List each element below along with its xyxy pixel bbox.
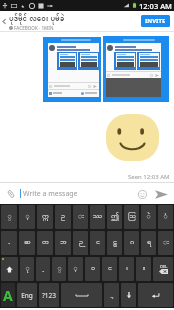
button[interactable]: တ <box>37 231 53 255</box>
staticText: 12:03 AM <box>139 1 172 11</box>
button[interactable]: ဝ <box>85 257 100 281</box>
button[interactable]: း <box>158 231 173 255</box>
staticText: . <box>42 265 44 274</box>
button[interactable]: Shift <box>1 257 18 281</box>
staticText: DEL <box>160 264 168 269</box>
button[interactable]: ္ <box>1 205 17 229</box>
button[interactable]: Attach file <box>4 187 17 200</box>
staticText: ္ <box>7 212 12 222</box>
staticText: ဝ <box>91 264 95 274</box>
staticText: ံ <box>163 212 168 222</box>
staticText: INVITE <box>145 17 166 25</box>
staticText: ု <box>25 264 30 274</box>
button[interactable]: ု <box>20 257 34 281</box>
button[interactable]: Switch language <box>1 283 15 307</box>
button[interactable]: Hide keyboard <box>121 283 136 307</box>
button[interactable]: ံ <box>158 205 173 229</box>
staticText: ၊ <box>126 264 128 274</box>
staticText: ဠ <box>113 238 117 248</box>
staticText: ., <box>110 291 114 300</box>
staticText: း <box>78 212 84 222</box>
button[interactable]: ဥ <box>55 205 71 229</box>
staticText: ?123 <box>42 291 56 300</box>
button[interactable]: Enter <box>138 283 173 307</box>
staticText: ဥ <box>61 212 65 222</box>
button[interactable]: ဆ <box>19 231 35 255</box>
button[interactable]: Send <box>153 186 169 202</box>
staticText: ဲ <box>146 212 151 222</box>
button[interactable]: Emoji <box>135 187 149 201</box>
staticText: ့ <box>25 212 30 222</box>
button[interactable]: ., <box>104 283 119 307</box>
staticText: တ <box>42 238 49 248</box>
button[interactable]: ဘ <box>55 231 71 255</box>
staticText: Seen 12:03 AM <box>128 173 170 181</box>
button[interactable]: · <box>1 231 17 255</box>
button[interactable]: ္ <box>52 257 66 281</box>
staticText: Write a message <box>23 189 78 199</box>
button[interactable]: ဠ <box>107 231 122 255</box>
staticText: Eng <box>21 291 33 300</box>
button[interactable]: ဤ <box>107 205 122 229</box>
button[interactable]: Back <box>0 11 9 31</box>
button[interactable]: Photo <box>43 36 101 102</box>
staticText: ဿ <box>93 212 102 222</box>
staticText: ဆ <box>24 238 31 248</box>
staticText: A <box>3 286 13 305</box>
staticText: ့ <box>73 264 78 274</box>
button[interactable]: ဲ <box>141 205 156 229</box>
staticText: ရ <box>147 238 151 248</box>
staticText: ။ <box>143 264 145 274</box>
button[interactable]: . <box>36 257 50 281</box>
staticText: း <box>163 238 169 248</box>
button[interactable]: ဂ <box>124 231 139 255</box>
staticText: ဤ <box>111 212 119 222</box>
button[interactable]: ?123 <box>39 283 59 307</box>
button[interactable]: INVITE <box>141 15 170 27</box>
staticText: င <box>108 264 112 274</box>
button[interactable]: ဿ <box>90 205 105 229</box>
staticText: ္ <box>57 264 62 274</box>
button[interactable]: Eng <box>17 283 37 307</box>
button[interactable]: Space <box>61 283 102 307</box>
staticText: ဘ <box>60 238 67 248</box>
staticText: · <box>8 239 10 248</box>
button[interactable]: ။ <box>136 257 151 281</box>
staticText: ဣ <box>42 212 49 222</box>
button[interactable]: ဉ <box>73 231 88 255</box>
staticText: ဂ <box>130 238 134 248</box>
staticText: ဩ <box>128 212 136 222</box>
button[interactable]: င <box>102 257 117 281</box>
button[interactable]: င <box>90 231 105 255</box>
button[interactable]: ့ <box>19 205 35 229</box>
button[interactable]: း <box>73 205 88 229</box>
staticText: င <box>96 238 100 248</box>
staticText: ဉ <box>79 238 83 248</box>
button[interactable]: ၊ <box>119 257 134 281</box>
button[interactable]: ရ <box>141 231 156 255</box>
button[interactable]: ့ <box>68 257 83 281</box>
button[interactable]: ဣ <box>37 205 53 229</box>
staticText: ပုဒ်မိုင် လဝေး ပုမ်ခဲ <box>9 12 65 24</box>
button[interactable]: Photo <box>103 36 169 102</box>
button[interactable]: ဩ <box>124 205 139 229</box>
staticText: FACEBOOK · 1MIN <box>14 25 54 31</box>
button[interactable]: Delete <box>153 257 173 281</box>
